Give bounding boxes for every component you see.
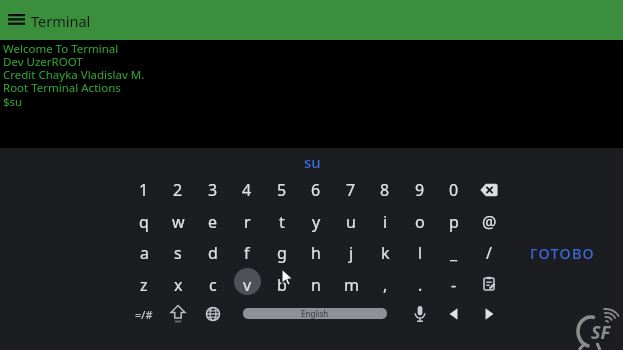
button[interactable]: 2: [161, 174, 195, 205]
button[interactable]: su: [272, 149, 352, 175]
button[interactable]: [165, 301, 191, 327]
staticText: b: [277, 274, 287, 296]
button[interactable]: 5: [265, 174, 299, 205]
staticText: 2: [173, 179, 183, 201]
staticText: n: [311, 274, 321, 296]
button[interactable]: 7: [334, 174, 368, 205]
staticText: 1: [139, 179, 149, 201]
button[interactable]: 6: [299, 174, 333, 205]
button[interactable]: [441, 301, 467, 327]
staticText: @: [482, 211, 497, 233]
button[interactable]: p: [437, 206, 471, 237]
button[interactable]: h: [299, 237, 333, 268]
button[interactable]: q: [127, 206, 161, 237]
staticText: z: [140, 274, 148, 296]
button[interactable]: [476, 271, 502, 297]
button[interactable]: o: [403, 206, 437, 237]
button[interactable]: 1: [127, 174, 161, 205]
button[interactable]: =/#: [127, 301, 161, 327]
staticText: -: [451, 274, 457, 296]
staticText: i: [383, 211, 388, 233]
staticText: 0: [449, 179, 459, 201]
staticText: p: [449, 211, 459, 233]
button[interactable]: -: [437, 269, 471, 300]
staticText: Terminal: [31, 11, 91, 31]
staticText: 8: [380, 179, 390, 201]
button[interactable]: m: [334, 269, 368, 300]
button[interactable]: d: [196, 237, 230, 268]
staticText: c: [209, 274, 217, 296]
staticText: f: [244, 242, 250, 264]
button[interactable]: a: [127, 237, 161, 268]
button[interactable]: r: [230, 206, 264, 237]
button[interactable]: 3: [196, 174, 230, 205]
staticText: 3: [208, 179, 218, 201]
button[interactable]: j: [334, 237, 368, 268]
staticText: =/#: [135, 307, 153, 322]
staticText: v: [243, 274, 252, 296]
staticText: r: [244, 211, 251, 233]
button[interactable]: 0: [437, 174, 471, 205]
button[interactable]: f: [230, 237, 264, 268]
staticText: 9: [415, 179, 425, 201]
button[interactable]: v: [230, 269, 264, 300]
staticText: English: [301, 308, 329, 319]
staticText: m: [344, 274, 359, 296]
button[interactable]: _: [437, 237, 471, 268]
button[interactable]: /: [472, 237, 506, 268]
button[interactable]: 9: [403, 174, 437, 205]
button[interactable]: [200, 301, 226, 327]
button[interactable]: s: [161, 237, 195, 268]
staticText: Credit Chayka Vladislav M.: [3, 67, 145, 83]
button[interactable]: ГОТОВО: [514, 238, 610, 268]
button[interactable]: l: [403, 237, 437, 268]
staticText: a: [140, 242, 149, 264]
button[interactable]: u: [334, 206, 368, 237]
button[interactable]: [474, 177, 504, 203]
staticText: 6: [311, 179, 321, 201]
staticText: 4: [242, 179, 252, 201]
button[interactable]: x: [161, 269, 195, 300]
staticText: s: [174, 242, 182, 264]
staticText: o: [415, 211, 425, 233]
button[interactable]: z: [127, 269, 161, 300]
button[interactable]: t: [265, 206, 299, 237]
staticText: g: [277, 242, 287, 264]
button[interactable]: w: [161, 206, 195, 237]
staticText: j: [349, 242, 354, 264]
button[interactable]: @: [472, 206, 506, 237]
staticText: /: [486, 242, 492, 264]
button[interactable]: k: [368, 237, 402, 268]
button[interactable]: i: [368, 206, 402, 237]
staticText: SF: [591, 320, 611, 345]
staticText: _: [450, 242, 458, 264]
staticText: x: [174, 274, 183, 296]
button[interactable]: [407, 301, 433, 327]
staticText: Root Terminal Actions: [3, 80, 121, 96]
staticText: k: [381, 242, 390, 264]
staticText: su: [304, 152, 321, 172]
button[interactable]: e: [196, 206, 230, 237]
staticText: e: [208, 211, 218, 233]
staticText: u: [346, 211, 356, 233]
staticText: Dev UzerROOT: [3, 54, 83, 70]
button[interactable]: 4: [230, 174, 264, 205]
staticText: $su: [3, 94, 23, 110]
button[interactable]: y: [299, 206, 333, 237]
staticText: w: [172, 211, 185, 233]
button[interactable]: 8: [368, 174, 402, 205]
staticText: q: [139, 211, 149, 233]
staticText: .: [418, 274, 423, 296]
button[interactable]: [3, 7, 29, 33]
button[interactable]: b: [265, 269, 299, 300]
button[interactable]: English: [243, 308, 387, 319]
button[interactable]: n: [299, 269, 333, 300]
staticText: y: [312, 211, 321, 233]
button[interactable]: c: [196, 269, 230, 300]
staticText: h: [311, 242, 321, 264]
button[interactable]: ,: [368, 269, 402, 300]
button[interactable]: .: [403, 269, 437, 300]
button[interactable]: [476, 301, 502, 327]
button[interactable]: g: [265, 237, 299, 268]
staticText: Welcome To Terminal: [3, 41, 119, 57]
